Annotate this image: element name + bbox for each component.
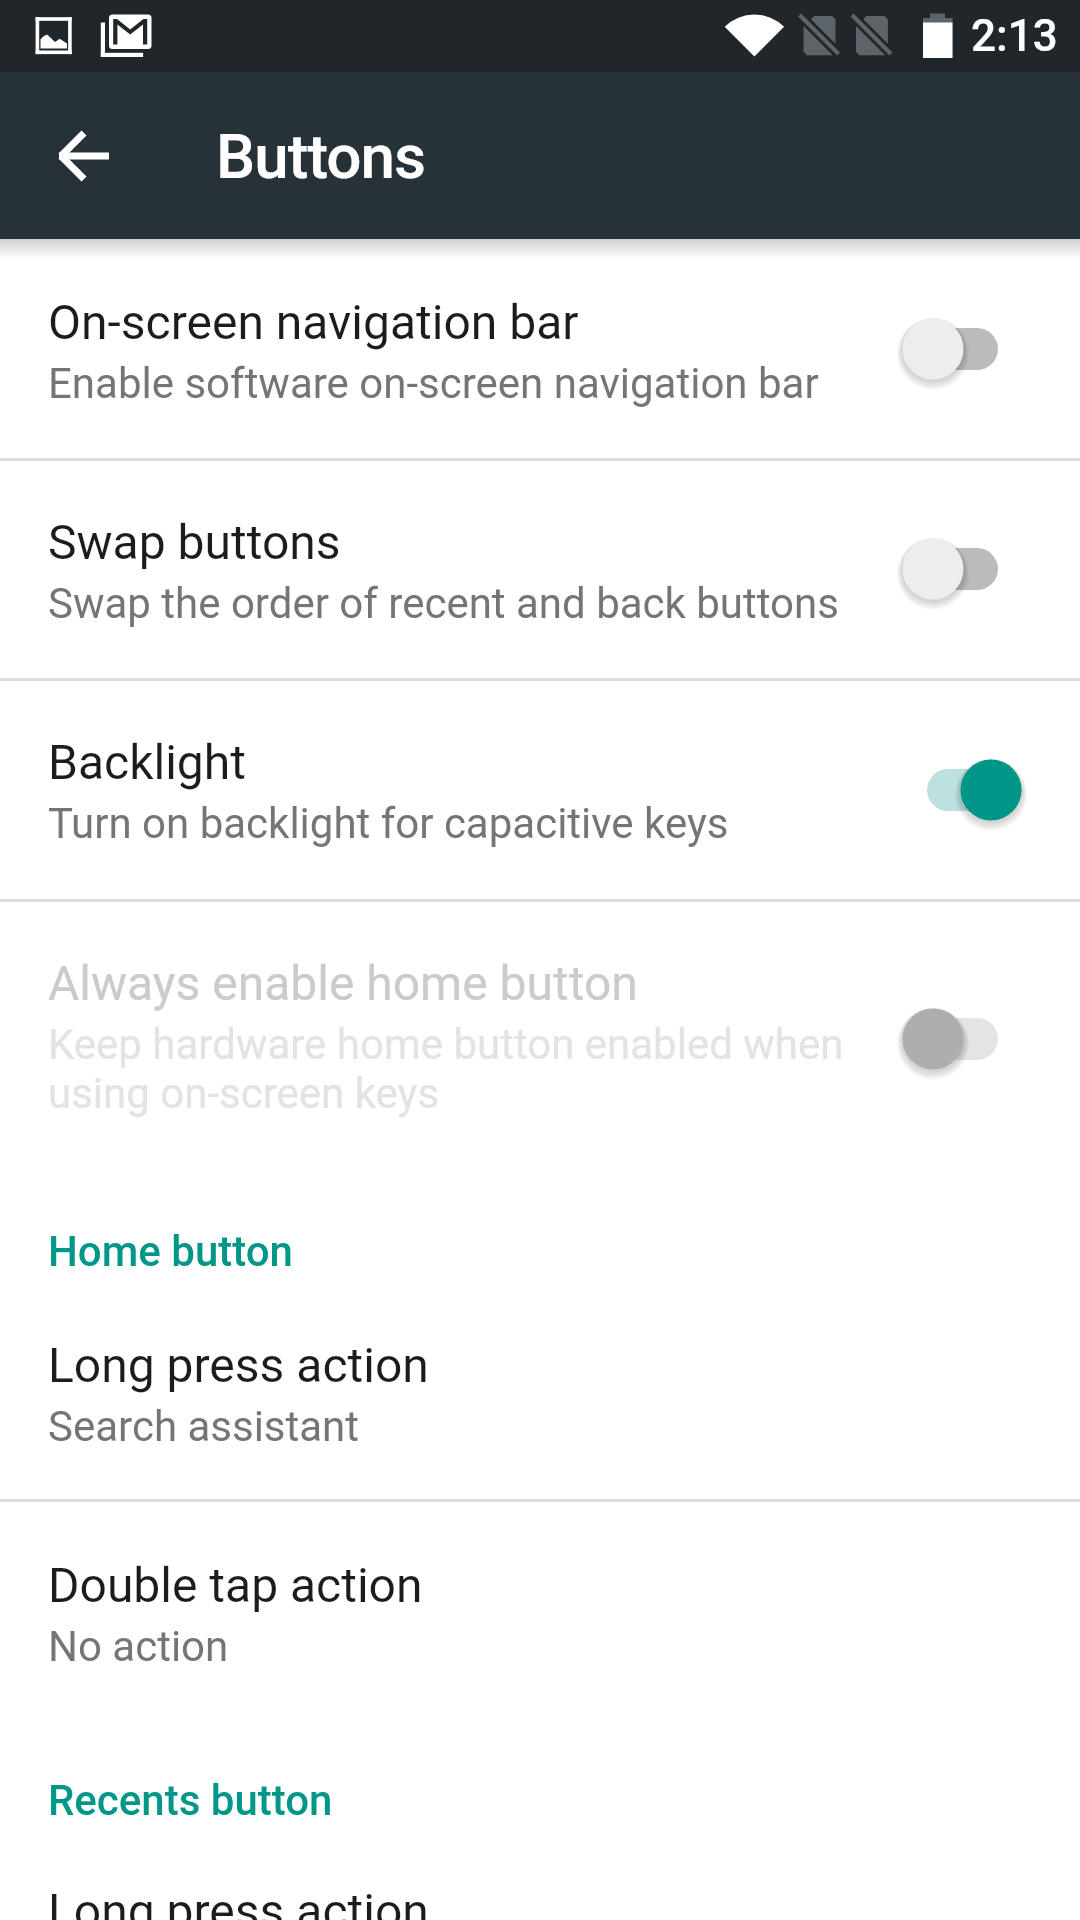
staticText: Turn on backlight for capacitive keys — [48, 799, 848, 848]
button[interactable]: Swap buttons — [0, 459, 1080, 679]
staticText: Backlight — [48, 735, 868, 791]
staticText: Home button — [48, 1227, 293, 1276]
button[interactable]: Always enable home button — [0, 900, 1080, 1178]
button[interactable]: Double tap action — [0, 1502, 1080, 1722]
button[interactable]: Long press action — [0, 1828, 1080, 1920]
button[interactable]: On-screen navigation bar — [0, 239, 1080, 459]
staticText: Search assistant — [48, 1402, 360, 1451]
button[interactable]: Long press action — [0, 1282, 1080, 1502]
staticText: 2:13 — [971, 10, 1058, 62]
button[interactable]: Toggle setting — [888, 730, 1038, 850]
staticText: Long press action — [48, 1884, 429, 1920]
button[interactable]: Toggle setting — [888, 979, 1038, 1099]
staticText: Keep hardware home button enabled when u… — [48, 1020, 848, 1118]
staticText: Swap buttons — [48, 515, 868, 571]
staticText: Recents button — [48, 1776, 333, 1825]
staticText: Enable software on-screen navigation bar — [48, 359, 848, 408]
staticText: Double tap action — [48, 1558, 423, 1614]
button[interactable]: Navigate up — [30, 102, 138, 210]
button[interactable]: Backlight — [0, 679, 1080, 900]
staticText: Buttons — [216, 120, 426, 193]
button[interactable]: Toggle setting — [888, 289, 1038, 409]
staticText: Swap the order of recent and back button… — [48, 579, 848, 628]
button[interactable]: Toggle setting — [888, 509, 1038, 629]
staticText: Long press action — [48, 1338, 429, 1394]
staticText: Always enable home button — [48, 956, 868, 1012]
staticText: On-screen navigation bar — [48, 295, 868, 351]
staticText: No action — [48, 1622, 229, 1671]
